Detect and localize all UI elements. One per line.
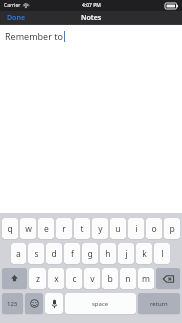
staticText: Notes xyxy=(81,13,102,23)
staticText: return xyxy=(150,300,168,308)
staticText: 4:07 PM xyxy=(82,2,101,9)
button[interactable]: w xyxy=(20,218,36,239)
button[interactable]: f xyxy=(64,243,80,264)
button[interactable]: h xyxy=(100,243,116,264)
staticText: t xyxy=(80,223,84,235)
staticText: h xyxy=(105,248,111,260)
button[interactable]: q xyxy=(2,218,18,239)
staticText: p xyxy=(169,223,175,235)
button[interactable]: v xyxy=(84,268,100,289)
staticText: g xyxy=(87,248,93,260)
button[interactable]: t xyxy=(74,218,90,239)
button[interactable]: m xyxy=(138,268,154,289)
staticText: c xyxy=(72,273,77,285)
staticText: 123 xyxy=(7,300,18,308)
staticText: o xyxy=(151,223,157,235)
staticText: a xyxy=(16,248,21,260)
button[interactable]: Dictation xyxy=(45,293,63,314)
button[interactable]: Remember to xyxy=(0,25,182,213)
button[interactable]: e xyxy=(38,218,54,239)
button[interactable]: r xyxy=(56,218,72,239)
staticText: q xyxy=(7,223,13,235)
staticText: w xyxy=(25,223,32,235)
staticText: Done xyxy=(7,13,26,23)
staticText: k xyxy=(142,248,147,260)
staticText: m xyxy=(142,273,150,285)
staticText: i xyxy=(135,223,138,235)
staticText: f xyxy=(71,248,74,260)
button[interactable]: l xyxy=(154,243,170,264)
staticText: n xyxy=(125,273,131,285)
staticText: space xyxy=(92,300,109,308)
staticText: s xyxy=(34,248,39,260)
staticText: e xyxy=(44,223,49,235)
staticText: b xyxy=(107,273,113,285)
staticText: l xyxy=(161,248,164,260)
button[interactable]: d xyxy=(46,243,62,264)
button[interactable]: k xyxy=(136,243,152,264)
button[interactable]: Shift xyxy=(2,268,27,289)
button[interactable]: Emoji xyxy=(25,293,43,314)
staticText: y xyxy=(98,223,103,235)
staticText: x xyxy=(54,273,59,285)
button[interactable]: Done xyxy=(0,11,32,25)
button[interactable]: Delete xyxy=(156,268,180,289)
button[interactable]: s xyxy=(28,243,44,264)
button[interactable]: y xyxy=(92,218,108,239)
button[interactable]: p xyxy=(164,218,180,239)
button[interactable]: o xyxy=(146,218,162,239)
button[interactable]: b xyxy=(102,268,118,289)
button[interactable]: return xyxy=(138,293,180,314)
button[interactable]: c xyxy=(66,268,82,289)
staticText: d xyxy=(51,248,57,260)
button[interactable]: g xyxy=(82,243,98,264)
button[interactable]: z xyxy=(29,268,46,289)
button[interactable]: j xyxy=(118,243,134,264)
button[interactable]: x xyxy=(48,268,64,289)
staticText: u xyxy=(115,223,121,235)
staticText: z xyxy=(36,273,40,285)
staticText: v xyxy=(90,273,95,285)
staticText: r xyxy=(62,223,66,235)
button[interactable]: i xyxy=(128,218,144,239)
staticText: j xyxy=(125,248,128,260)
staticText: Remember to xyxy=(5,30,63,42)
staticText: Carrier xyxy=(4,2,21,9)
button[interactable]: n xyxy=(120,268,136,289)
button[interactable]: u xyxy=(110,218,126,239)
button[interactable]: Numbers xyxy=(2,293,23,314)
button[interactable]: space xyxy=(65,293,136,314)
button[interactable]: a xyxy=(11,243,26,264)
